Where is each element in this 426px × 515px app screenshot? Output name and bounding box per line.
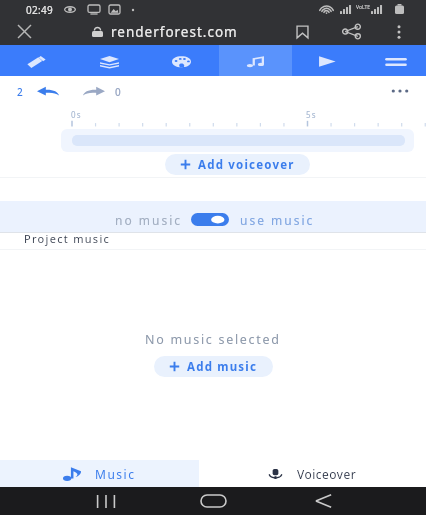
staticText: 0 <box>115 85 121 99</box>
staticText: use music <box>240 212 315 228</box>
button[interactable]: Undo <box>32 81 63 101</box>
button[interactable]: Close <box>6 18 42 45</box>
staticText: No music selected <box>145 331 281 348</box>
button[interactable]: Preview <box>303 45 351 76</box>
staticText: 02:49 <box>26 3 54 17</box>
staticText: 2 <box>17 85 23 99</box>
staticText: Project music <box>24 231 111 246</box>
button[interactable]: Music <box>0 460 199 487</box>
staticText: Add music <box>187 359 258 375</box>
staticText: 5s <box>306 109 317 120</box>
staticText: Voiceover <box>297 466 357 482</box>
button[interactable]: Music <box>230 45 278 76</box>
button[interactable]: Bookmark <box>284 18 320 45</box>
button[interactable]: More <box>385 79 415 103</box>
button[interactable]: Recents <box>74 487 138 515</box>
button[interactable]: Colors <box>157 45 205 76</box>
staticText: renderforest.com <box>111 23 238 41</box>
button[interactable]: Add voiceover <box>165 154 310 175</box>
button[interactable]: Add music <box>154 356 273 377</box>
button[interactable]: Menu <box>372 45 420 76</box>
staticText: no music <box>115 212 183 228</box>
button[interactable]: Edit <box>12 45 60 76</box>
staticText: VoLTE <box>356 4 371 11</box>
button[interactable]: Voiceover <box>199 460 426 487</box>
staticText: 0s <box>71 109 82 120</box>
button[interactable]: Use music toggle <box>191 213 229 226</box>
staticText: Add voiceover <box>198 157 295 173</box>
button[interactable]: More options <box>384 18 414 45</box>
button[interactable]: Home <box>181 487 245 515</box>
button[interactable]: Layers <box>85 45 133 76</box>
button[interactable]: Redo <box>78 81 109 101</box>
button[interactable]: Back <box>291 487 355 515</box>
button[interactable]: Share <box>330 18 372 45</box>
staticText: Music <box>95 466 136 482</box>
